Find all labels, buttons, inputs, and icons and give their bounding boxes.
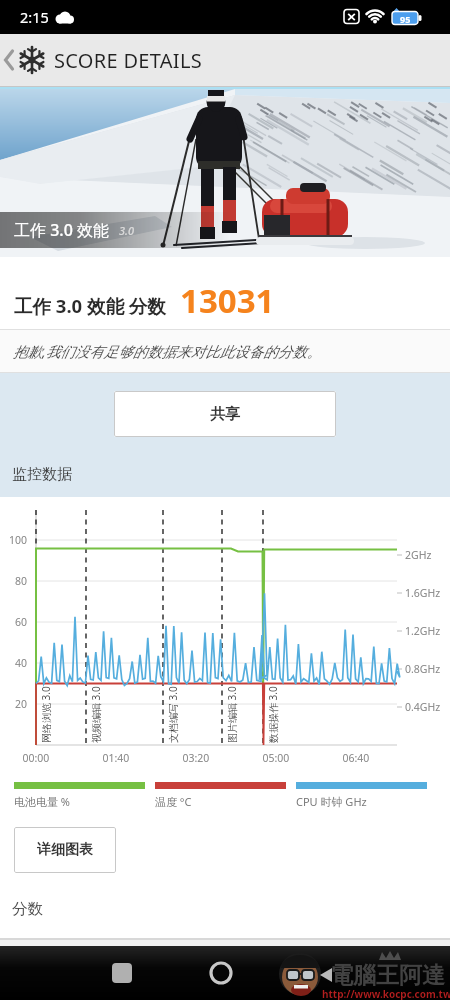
staticText: 监控数据 [12,465,72,484]
staticText: 详细图表 [37,841,93,859]
staticText: 工作 3.0 效能 [14,219,109,241]
staticText: 2:15 [20,7,49,27]
button[interactable] [203,955,239,991]
staticText: SCORE DETAILS [54,47,202,74]
button[interactable]: SCORE DETAILS [3,34,450,86]
button[interactable]: 共享 [114,391,336,437]
staticText: 温度 °C [155,794,192,809]
staticText: 3.0 [119,223,135,238]
staticText: 分数 [12,899,43,919]
staticText: 电池电量 % [14,794,71,809]
staticText: 13031 [180,278,275,323]
staticText: 共享 [210,405,240,424]
staticText: 抱歉,我们没有足够的数据来对比此设备的分数。 [13,341,322,361]
button[interactable] [104,955,140,991]
staticText: 工作 3.0 效能 分数 [14,293,166,318]
staticText: 95 [400,13,411,25]
staticText: CPU 时钟 GHz [296,794,367,809]
button[interactable]: 详细图表 [14,827,116,873]
